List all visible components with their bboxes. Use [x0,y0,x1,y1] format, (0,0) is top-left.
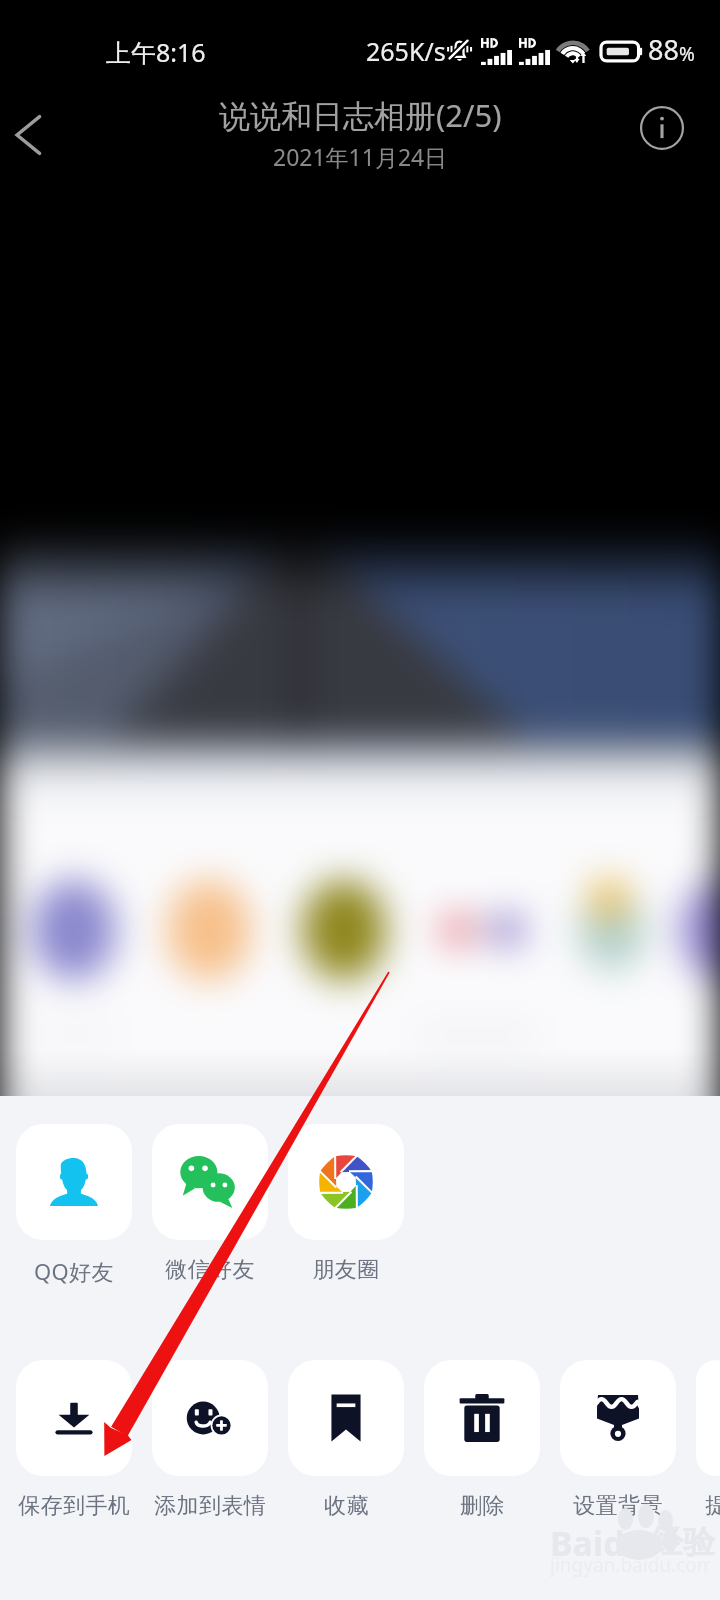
staticText: 微信好友 [165,1256,255,1284]
staticText: 设置背景 [573,1492,663,1520]
staticText: 88 [648,31,679,68]
staticText: 删除 [460,1492,505,1520]
button[interactable]: 删除 [424,1360,540,1550]
staticText: 收藏 [324,1492,369,1520]
button[interactable]: 收藏 [288,1360,404,1550]
staticText: 朋友圈 [312,1256,380,1284]
staticText: 说说和日志相册(2/5) [219,94,502,136]
button[interactable]: QQ好友 [16,1124,132,1314]
staticText: 2021年11月24日 [273,141,448,172]
staticText: 265K/s [366,34,446,68]
staticText: 添加到表情 [154,1492,266,1520]
staticText: 上午8:16 [106,35,206,69]
staticText: 保存到手机 [18,1492,130,1520]
button[interactable]: Info [631,97,693,159]
staticText: 经验 [651,1522,715,1562]
staticText: 提 [705,1492,720,1520]
staticText: QQ好友 [34,1256,114,1286]
button[interactable]: 微信好友 [152,1124,268,1314]
button[interactable]: 保存到手机 [16,1360,132,1550]
button[interactable]: 添加到表情 [152,1360,268,1550]
staticText: Baidu [550,1520,647,1566]
staticText: % [679,41,695,67]
button[interactable]: 朋友圈 [288,1124,404,1314]
button[interactable]: 提 [696,1360,720,1550]
staticText: jingyan.baidu.com [550,1552,710,1578]
button[interactable]: 设置背景 [560,1360,676,1550]
button[interactable]: Back [0,95,60,175]
